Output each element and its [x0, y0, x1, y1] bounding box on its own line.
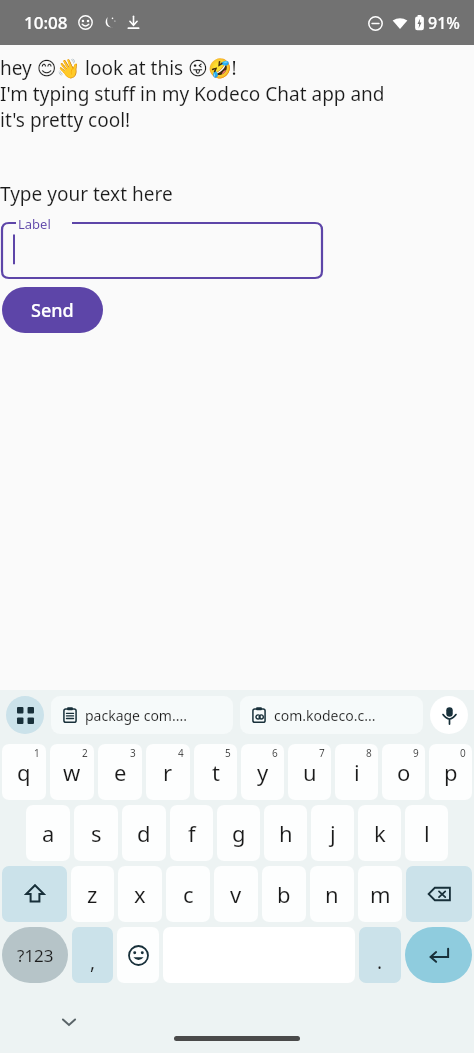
button[interactable]: ?123 [2, 927, 68, 983]
staticText: k [374, 818, 386, 848]
staticText: w [63, 757, 81, 787]
staticText: 10:08 [24, 11, 68, 34]
button[interactable]: Label [2, 216, 322, 278]
staticText: h [279, 818, 293, 848]
staticText: j [330, 818, 336, 848]
button[interactable]: Emoji [117, 927, 159, 983]
staticText: d [137, 818, 151, 848]
button[interactable]: p [429, 744, 472, 800]
staticText: m [370, 879, 391, 909]
button[interactable]: x [118, 866, 162, 922]
staticText: I'm typing stuff in my Kodeco Chat app a… [0, 81, 385, 107]
button[interactable]: v [214, 866, 258, 922]
button[interactable]: Toolbar [6, 696, 44, 734]
staticText: z [87, 879, 98, 909]
button[interactable]: f [170, 805, 213, 861]
button[interactable]: Voice input [430, 696, 468, 734]
button[interactable]: Backspace [406, 866, 472, 922]
button[interactable]: l [405, 805, 448, 861]
staticText: l [424, 818, 430, 848]
button[interactable]: i [335, 744, 378, 800]
staticText: e [114, 757, 127, 787]
staticText: 9 [413, 746, 419, 760]
staticText: 1 [34, 746, 40, 760]
staticText: r [163, 757, 173, 787]
button[interactable]: , [72, 927, 113, 983]
staticText: Label [18, 215, 51, 233]
button[interactable]: Hide keyboard [53, 1006, 85, 1038]
staticText: c [183, 879, 194, 909]
staticText: . [377, 949, 383, 975]
button[interactable]: Send [2, 287, 103, 333]
staticText: g [232, 818, 246, 848]
staticText: i [354, 757, 360, 787]
button[interactable]: b [262, 866, 306, 922]
staticText: 7 [319, 746, 325, 760]
button[interactable]: j [311, 805, 354, 861]
button[interactable]: d [122, 805, 166, 861]
button[interactable]: r [146, 744, 190, 800]
button[interactable]: package com.... [51, 696, 233, 734]
staticText: f [188, 818, 196, 848]
staticText: Type your text here [0, 181, 173, 207]
button[interactable]: com.kodeco.c... [240, 696, 423, 734]
button[interactable]: t [194, 744, 237, 800]
button[interactable]: e [98, 744, 142, 800]
staticText: a [42, 818, 55, 848]
button[interactable]: u [288, 744, 331, 800]
staticText: 6 [272, 746, 278, 760]
button[interactable]: z [71, 866, 114, 922]
staticText: ?123 [17, 944, 54, 967]
button[interactable]: w [50, 744, 94, 800]
button[interactable]: h [264, 805, 307, 861]
staticText: it's pretty cool! [0, 107, 131, 133]
staticText: v [230, 879, 242, 909]
button[interactable]: s [74, 805, 118, 861]
button[interactable]: . [359, 927, 401, 983]
staticText: p [444, 757, 458, 787]
staticText: u [303, 757, 317, 787]
button[interactable]: g [217, 805, 260, 861]
staticText: o [397, 757, 411, 787]
staticText: y [257, 757, 269, 787]
staticText: com.kodeco.c... [274, 706, 376, 725]
button[interactable]: Enter [405, 927, 472, 983]
staticText: 8 [366, 746, 372, 760]
staticText: Send [31, 298, 74, 323]
staticText: x [134, 879, 146, 909]
staticText: t [212, 757, 220, 787]
staticText: 4 [178, 746, 184, 760]
button[interactable]: q [2, 744, 46, 800]
staticText: , [90, 949, 96, 975]
staticText: 5 [225, 746, 231, 760]
button[interactable]: n [310, 866, 354, 922]
staticText: q [17, 757, 31, 787]
button[interactable]: c [166, 866, 210, 922]
staticText: s [91, 818, 102, 848]
staticText: 3 [130, 746, 136, 760]
staticText: 0 [460, 746, 466, 760]
button[interactable]: y [241, 744, 284, 800]
staticText: 91% [428, 12, 460, 34]
staticText: n [325, 879, 339, 909]
button[interactable]: k [358, 805, 401, 861]
button[interactable]: m [358, 866, 402, 922]
staticText: package com.... [85, 706, 187, 725]
staticText: b [277, 879, 291, 909]
button[interactable]: Shift [2, 866, 67, 922]
staticText: 2 [82, 746, 88, 760]
button[interactable]: o [382, 744, 425, 800]
staticText: hey 😊👋 look at this 😜🤣! [0, 55, 237, 81]
button[interactable]: a [26, 805, 70, 861]
